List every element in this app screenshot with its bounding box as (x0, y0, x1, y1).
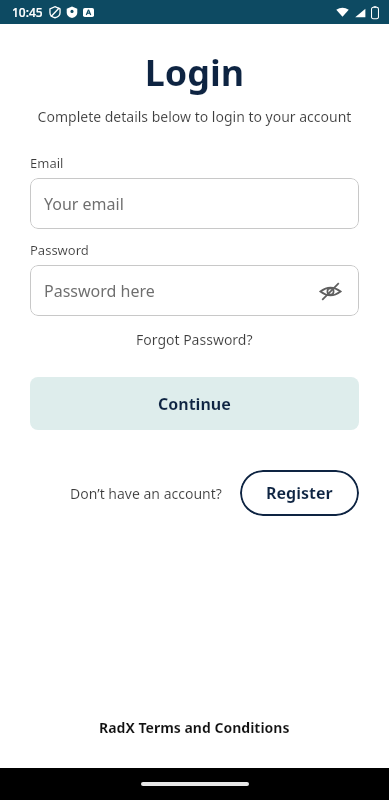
staticText: Login (0, 48, 389, 97)
staticText: Your email (44, 193, 124, 215)
staticText: Continue (158, 393, 231, 415)
staticText: Email (30, 154, 64, 172)
staticText: Complete details below to login to your … (0, 107, 389, 126)
button[interactable]: Your email (30, 178, 359, 229)
staticText: 10:45 (12, 4, 43, 20)
button[interactable]: RadX Terms and Conditions (93, 715, 296, 740)
button[interactable]: Register (240, 470, 359, 516)
button[interactable]: Show password (315, 276, 345, 306)
staticText: Forgot Password? (136, 330, 253, 349)
button[interactable]: Password here (30, 265, 359, 316)
staticText: RadX Terms and Conditions (99, 718, 290, 737)
staticText: Password here (44, 280, 155, 302)
staticText: Don’t have an account? (70, 484, 222, 503)
button[interactable]: Forgot Password? (130, 328, 259, 351)
staticText: Password (30, 241, 89, 259)
staticText: Register (266, 482, 333, 504)
button[interactable]: Continue (30, 377, 359, 430)
